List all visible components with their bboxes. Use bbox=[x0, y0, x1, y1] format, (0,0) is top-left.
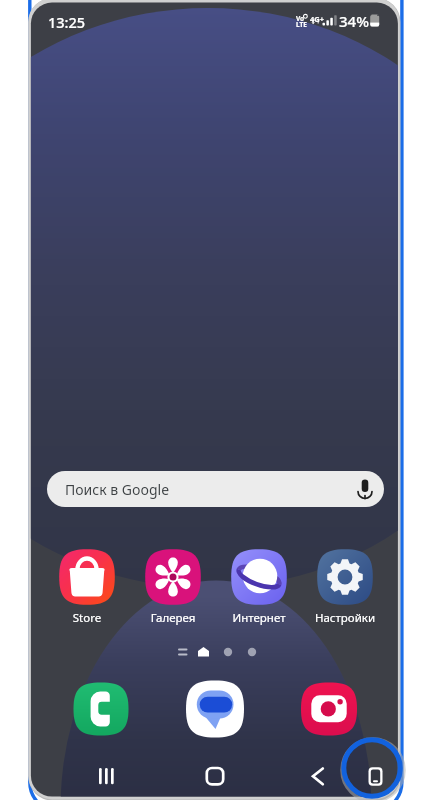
button[interactable]: One-handed mode bbox=[347, 743, 397, 793]
staticText: Интернет bbox=[216, 610, 302, 626]
button[interactable]: Recent apps bbox=[86, 751, 136, 800]
staticText: 34% bbox=[339, 11, 369, 31]
button[interactable]: Back bbox=[293, 751, 343, 800]
staticText: LTE bbox=[296, 20, 307, 29]
button[interactable]: Store bbox=[44, 546, 130, 626]
button[interactable]: Галерея bbox=[130, 546, 216, 626]
staticText: Галерея bbox=[130, 610, 216, 626]
button[interactable]: Интернет bbox=[216, 546, 302, 626]
staticText: Vo bbox=[296, 14, 305, 23]
button[interactable]: Поиск в Google bbox=[47, 471, 384, 507]
button[interactable]: Home bbox=[190, 751, 240, 800]
staticText: Store bbox=[44, 610, 130, 626]
staticText: Настройки bbox=[302, 610, 388, 626]
button[interactable]: Настройки bbox=[302, 546, 388, 626]
staticText: Поиск в Google bbox=[65, 480, 170, 499]
button[interactable]: Camera bbox=[298, 678, 360, 740]
button[interactable]: Messages bbox=[184, 678, 246, 740]
staticText: 13:25 bbox=[48, 12, 86, 32]
staticText: 4G+ bbox=[310, 14, 325, 24]
button[interactable]: Phone bbox=[70, 678, 132, 740]
